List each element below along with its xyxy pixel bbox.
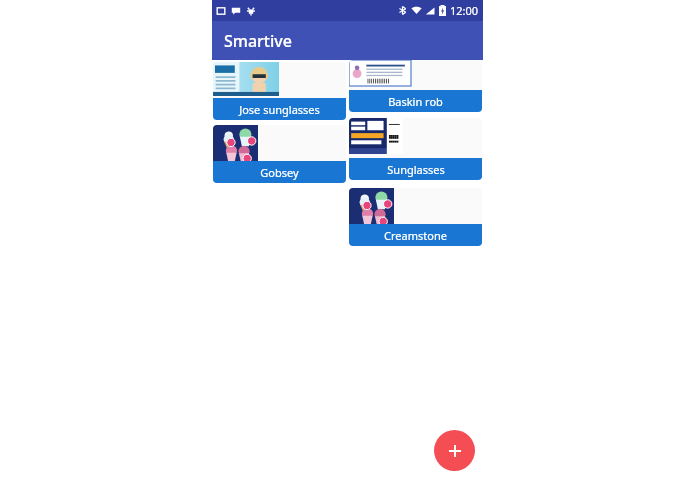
staticText: Smartive [224,30,292,52]
staticText: Jose sunglasses [239,102,320,117]
staticText: Creamstone [384,228,447,243]
button[interactable]: Gobsey [213,125,346,183]
staticText: Gobsey [260,165,299,180]
button[interactable]: Sunglasses [349,118,482,180]
staticText: Sunglasses [387,162,445,177]
button[interactable]: Add coupon [434,430,475,471]
button[interactable]: Creamstone [349,188,482,246]
button[interactable]: Baskin rob [349,60,482,112]
button[interactable]: Jose sunglasses [213,62,346,120]
staticText: Baskin rob [388,94,443,109]
staticText: 12:00 [450,3,479,18]
